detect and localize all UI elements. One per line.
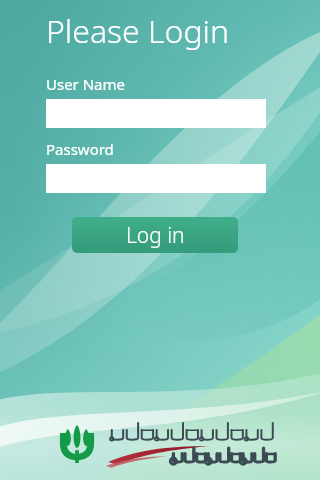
button[interactable]: Log in — [72, 217, 238, 253]
staticText: User Name — [46, 74, 126, 94]
staticText: Log in — [126, 221, 185, 250]
other: Company logo — [58, 423, 96, 463]
staticText: Please Login — [46, 9, 230, 53]
staticText: Password — [46, 139, 114, 159]
